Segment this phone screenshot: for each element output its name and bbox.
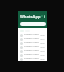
staticText: WhatsApp xyxy=(20,14,41,19)
button[interactable]: Contact Name xyxy=(18,33,47,37)
staticText: Contact Name xyxy=(24,45,39,48)
button[interactable]: Profile xyxy=(44,15,45,18)
button[interactable]: Contact Name xyxy=(18,37,47,41)
button[interactable]: Contact Name xyxy=(18,41,47,45)
staticText: 10:00 xyxy=(40,34,45,36)
staticText: Contact Name xyxy=(24,37,39,40)
button[interactable]: Contact Name xyxy=(18,53,47,57)
staticText: Contact Name xyxy=(24,57,39,60)
staticText: Contact Name xyxy=(24,53,39,56)
button[interactable]: Contact Name xyxy=(18,45,47,49)
staticText: 10:02 xyxy=(40,42,45,44)
button[interactable]: Contact Name xyxy=(18,57,47,61)
staticText: 10:06 xyxy=(40,58,45,60)
staticText: 10:04 xyxy=(40,50,45,52)
button[interactable] xyxy=(20,22,46,26)
button[interactable]: Contact Name xyxy=(18,49,47,53)
staticText: Contact Name xyxy=(24,41,39,44)
staticText: 10:01 xyxy=(40,38,45,40)
staticText: Contact Name xyxy=(24,33,39,36)
staticText: 10:03 xyxy=(40,46,45,48)
staticText: Contact Name xyxy=(24,49,39,52)
staticText: 10:05 xyxy=(40,54,45,56)
